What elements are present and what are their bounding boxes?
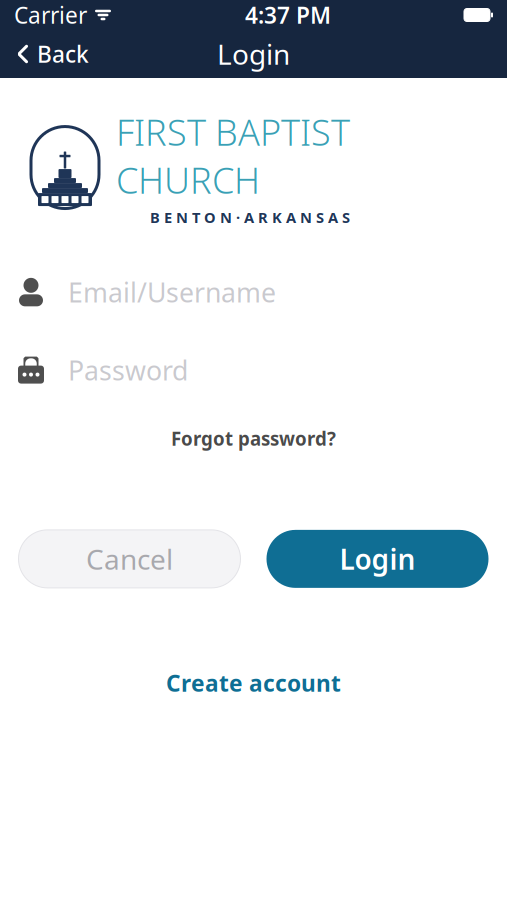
staticText: Carrier [14, 0, 87, 30]
staticText: Login [217, 35, 290, 73]
staticText: Create account [166, 668, 341, 698]
button[interactable]: Login [266, 530, 488, 588]
staticText: B E N T O N · A R K A N S A S [150, 208, 350, 227]
staticText: Forgot password? [171, 426, 336, 451]
button[interactable]: Forgot password? [153, 417, 354, 460]
button[interactable]: Cancel [18, 530, 240, 588]
button[interactable]: Back [0, 30, 105, 78]
staticText: Email/Username [68, 274, 276, 310]
staticText: FIRST BAPTIST CHURCH [116, 108, 350, 204]
button[interactable]: Create account [148, 658, 359, 708]
staticText: Back [37, 39, 89, 69]
staticText: Login [339, 540, 415, 577]
staticText: Password [68, 352, 188, 388]
staticText: Cancel [86, 540, 173, 577]
staticText: 4:37 PM [245, 0, 331, 30]
